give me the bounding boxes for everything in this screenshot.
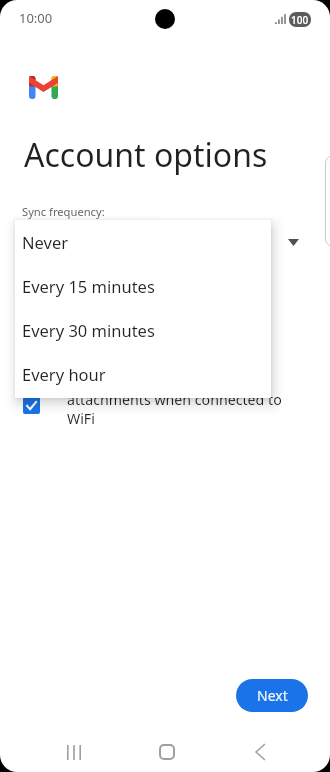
staticText: Never [22,231,69,253]
staticText: Every hour [22,363,106,385]
staticText: Sync frequency: [22,204,105,219]
staticText: attachments when connected to WiFi [67,390,291,428]
button[interactable]: Recents [47,732,101,772]
staticText: 10:00 [19,9,53,27]
button[interactable]: Every hour [15,352,271,396]
button[interactable]: attachments when connected to WiFi [23,386,291,424]
button[interactable]: Every 30 minutes [15,308,271,352]
staticText: Every 15 minutes [22,275,155,297]
staticText: Every 30 minutes [22,319,155,341]
button[interactable]: Home [140,732,194,772]
button[interactable]: Every 15 minutes [15,264,271,308]
staticText: Next [257,686,288,705]
staticText: 100 [291,13,309,27]
button[interactable]: Next [236,679,308,712]
staticText: Account options [24,133,268,177]
button[interactable]: Back [233,732,287,772]
button[interactable]: Never [15,220,271,264]
